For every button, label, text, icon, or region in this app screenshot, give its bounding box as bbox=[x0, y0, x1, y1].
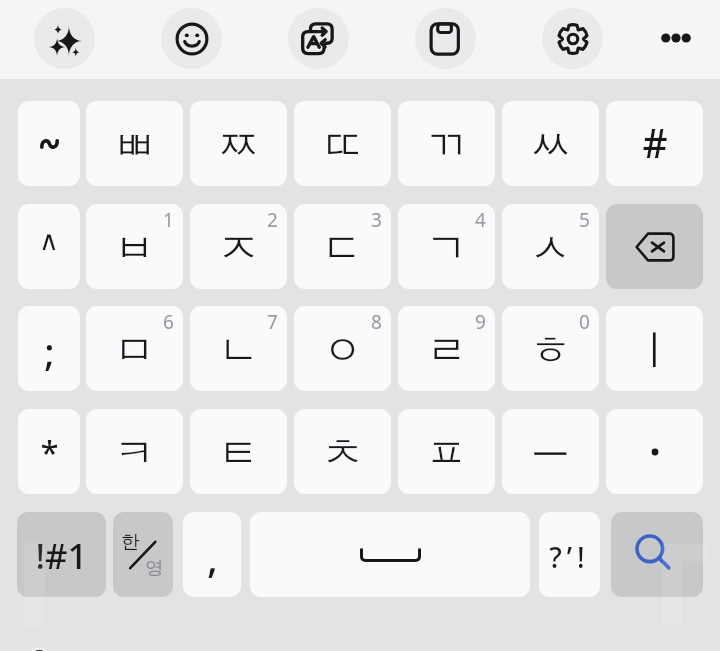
button[interactable]: 한 bbox=[113, 512, 173, 597]
button[interactable]: Backspace bbox=[606, 204, 703, 289]
staticText: ㅈ bbox=[218, 223, 259, 275]
staticText: ㄲ bbox=[426, 120, 467, 172]
button[interactable]: ㅂ bbox=[86, 204, 183, 289]
staticText: ㅊ bbox=[322, 428, 363, 480]
staticText: ㄹ bbox=[426, 325, 467, 377]
button[interactable]: ㅎ bbox=[502, 306, 599, 391]
staticText: ㅃ bbox=[114, 120, 155, 172]
staticText: 8 bbox=[371, 309, 382, 335]
staticText: ㄱ bbox=[426, 223, 467, 275]
staticText: ㅁ bbox=[114, 325, 155, 377]
staticText: * bbox=[40, 430, 59, 475]
button[interactable]: ㅣ bbox=[606, 306, 703, 391]
staticText: , bbox=[207, 530, 218, 584]
button[interactable]: ㅍ bbox=[398, 409, 495, 494]
staticText: 5 bbox=[579, 207, 590, 233]
staticText: 4 bbox=[475, 207, 486, 233]
button[interactable]: Search bbox=[611, 512, 703, 597]
staticText: ㅋ bbox=[114, 428, 155, 480]
staticText: 2 bbox=[267, 207, 278, 233]
staticText: ㅎ bbox=[530, 325, 571, 377]
button[interactable]: ∧ bbox=[18, 204, 80, 289]
button[interactable]: ㄹ bbox=[398, 306, 495, 391]
button[interactable]: # bbox=[606, 101, 703, 186]
button[interactable]: , bbox=[183, 512, 241, 597]
other: Search bbox=[635, 534, 671, 570]
button[interactable]: ㅇ bbox=[294, 306, 391, 391]
button[interactable]: ㅋ bbox=[86, 409, 183, 494]
staticText: ㅂ bbox=[114, 223, 155, 275]
button[interactable]: Sparkle bbox=[34, 8, 95, 69]
staticText: 0 bbox=[579, 309, 590, 335]
button[interactable]: * bbox=[18, 409, 80, 494]
button[interactable]: Translate bbox=[288, 8, 349, 69]
button[interactable]: ㅌ bbox=[190, 409, 287, 494]
button[interactable]: ㄸ bbox=[294, 101, 391, 186]
button[interactable]: Emoji bbox=[161, 8, 222, 69]
staticText: 3 bbox=[371, 207, 382, 233]
button[interactable]: ㄱ bbox=[398, 204, 495, 289]
button[interactable]: ㄷ bbox=[294, 204, 391, 289]
staticText: 1 bbox=[163, 207, 174, 233]
other: Space bbox=[360, 547, 421, 562]
button[interactable]: Space bbox=[250, 512, 530, 597]
staticText: ?’! bbox=[549, 538, 590, 576]
staticText: ㄷ bbox=[322, 223, 363, 275]
staticText: 6 bbox=[163, 309, 174, 335]
staticText: !#1 bbox=[35, 532, 88, 580]
staticText: 영 bbox=[145, 556, 164, 579]
button[interactable]: !#1 bbox=[17, 512, 106, 597]
staticText: ∧ bbox=[39, 225, 59, 256]
staticText: ㅆ bbox=[530, 120, 571, 172]
button[interactable]: Settings bbox=[542, 8, 603, 69]
staticText: ㅍ bbox=[426, 428, 467, 480]
button[interactable]: ㄴ bbox=[190, 306, 287, 391]
button[interactable]: ㅅ bbox=[502, 204, 599, 289]
button[interactable]: Clipboard bbox=[415, 8, 476, 69]
staticText: ㄴ bbox=[218, 325, 259, 377]
button[interactable]: ㅡ bbox=[502, 409, 599, 494]
staticText: ㅡ bbox=[530, 418, 571, 470]
button[interactable] bbox=[606, 409, 703, 494]
button[interactable]: ㅊ bbox=[294, 409, 391, 494]
staticText: ; bbox=[44, 325, 55, 377]
button[interactable]: ㄲ bbox=[398, 101, 495, 186]
staticText: ㅌ bbox=[218, 428, 259, 480]
button[interactable]: ㅉ bbox=[190, 101, 287, 186]
button[interactable]: ; bbox=[18, 306, 80, 391]
staticText: ㅇ bbox=[322, 325, 363, 377]
button[interactable]: ㅆ bbox=[502, 101, 599, 186]
button[interactable]: More options bbox=[646, 8, 706, 68]
staticText: ㅉ bbox=[218, 120, 259, 172]
button[interactable]: ㅈ bbox=[190, 204, 287, 289]
other: Backspace bbox=[635, 232, 675, 262]
button[interactable]: ?’! bbox=[539, 512, 600, 597]
button[interactable]: ㅃ bbox=[86, 101, 183, 186]
staticText: 9 bbox=[475, 309, 486, 335]
staticText: 한 bbox=[121, 530, 140, 553]
staticText: ㅣ bbox=[634, 325, 675, 377]
staticText: ㄸ bbox=[322, 120, 363, 172]
button[interactable] bbox=[18, 101, 80, 186]
staticText: 7 bbox=[267, 309, 278, 335]
staticText: # bbox=[642, 116, 668, 169]
staticText: ㅅ bbox=[530, 223, 571, 275]
button[interactable]: ㅁ bbox=[86, 306, 183, 391]
